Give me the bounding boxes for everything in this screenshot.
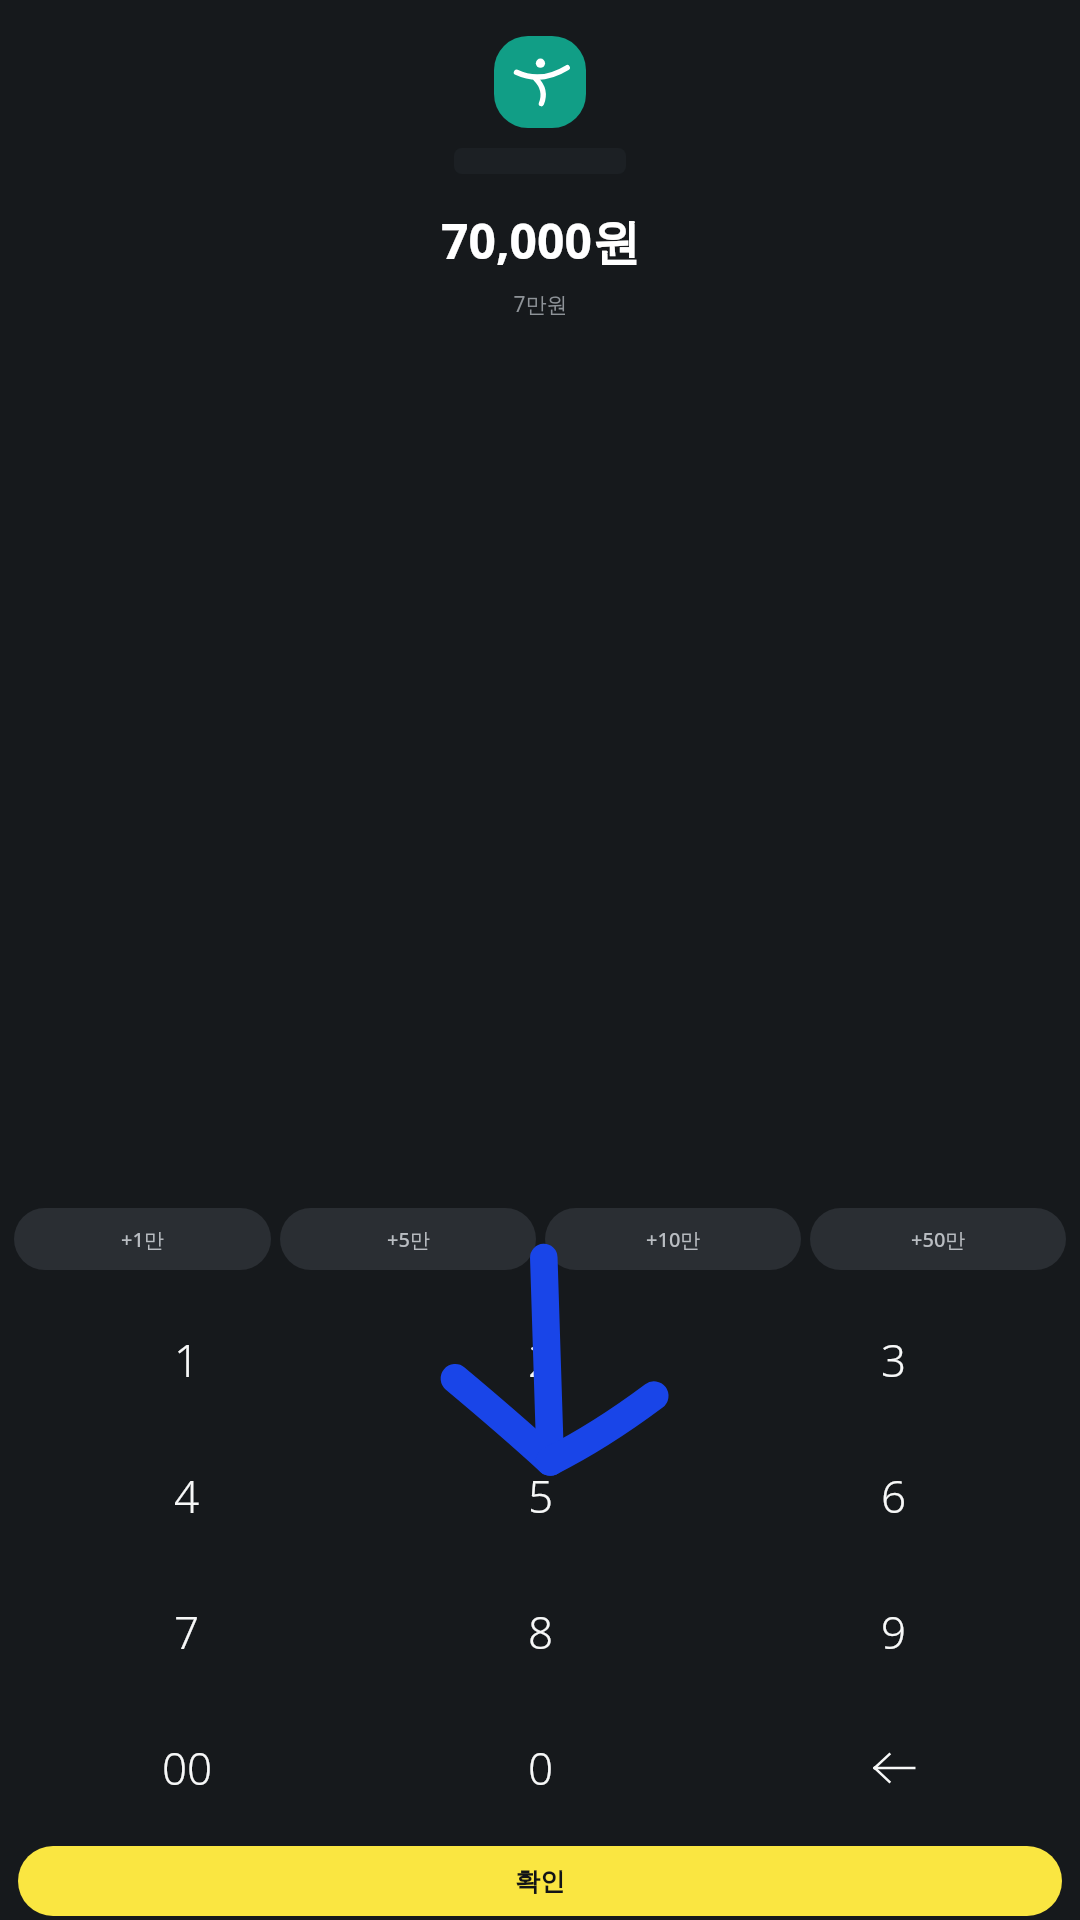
button[interactable]: 4 xyxy=(10,1428,364,1564)
button[interactable]: 확인 xyxy=(18,1846,1062,1916)
staticText: +10만 xyxy=(646,1226,701,1253)
staticText: 7만원 xyxy=(513,290,568,319)
button[interactable]: 0 xyxy=(364,1700,717,1836)
staticText: 2 xyxy=(528,1330,554,1390)
staticText: +5만 xyxy=(387,1226,430,1253)
staticText: 7 xyxy=(174,1602,200,1662)
staticText: 6 xyxy=(881,1466,907,1526)
staticText: 0 xyxy=(528,1738,554,1798)
staticText: +50만 xyxy=(911,1226,966,1253)
staticText: 00 xyxy=(162,1738,213,1798)
other: App icon xyxy=(494,36,586,128)
button[interactable]: +1만 xyxy=(14,1208,271,1270)
button[interactable]: +50만 xyxy=(810,1208,1066,1270)
staticText: 9 xyxy=(881,1602,907,1662)
staticText: +1만 xyxy=(121,1226,164,1253)
staticText: 5 xyxy=(528,1466,554,1526)
staticText: 확인 xyxy=(515,1866,565,1897)
button[interactable]: +5만 xyxy=(280,1208,536,1270)
staticText: 4 xyxy=(174,1466,200,1526)
staticText: 70,000원 xyxy=(441,208,640,274)
button[interactable]: 8 xyxy=(364,1564,717,1700)
button[interactable]: 5 xyxy=(364,1428,717,1564)
staticText: 3 xyxy=(881,1330,907,1390)
button[interactable]: 6 xyxy=(717,1428,1070,1564)
button[interactable]: +10만 xyxy=(545,1208,801,1270)
button[interactable]: 9 xyxy=(717,1564,1070,1700)
staticText: 1 xyxy=(174,1330,200,1390)
button[interactable]: 3 xyxy=(717,1292,1070,1428)
button[interactable]: 00 xyxy=(10,1700,364,1836)
button[interactable]: 7 xyxy=(10,1564,364,1700)
staticText: 8 xyxy=(528,1602,554,1662)
button[interactable]: Backspace xyxy=(717,1700,1070,1836)
button[interactable]: 1 xyxy=(10,1292,364,1428)
button[interactable]: 2 xyxy=(364,1292,717,1428)
